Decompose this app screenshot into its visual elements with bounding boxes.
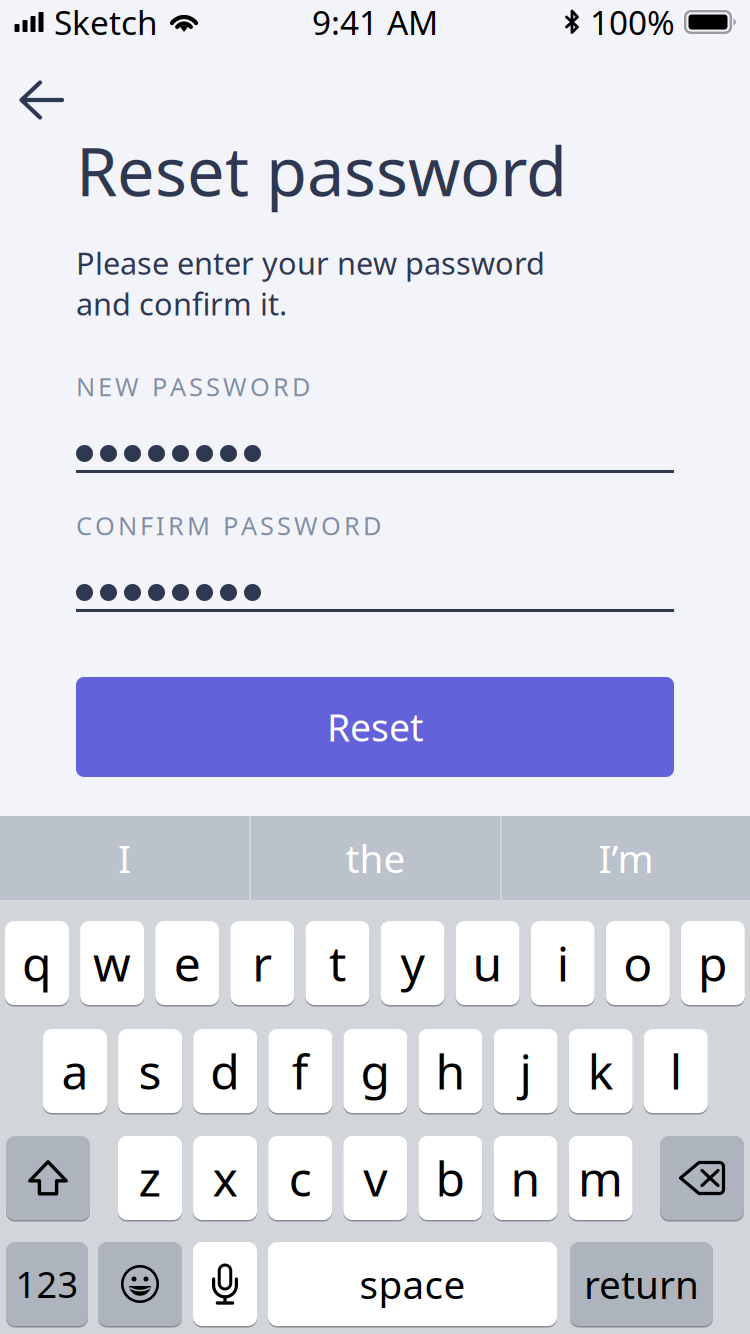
staticText: I’m	[598, 832, 653, 884]
staticText: y	[400, 931, 424, 995]
button[interactable]: q	[5, 919, 69, 1006]
button[interactable]: I	[0, 816, 249, 900]
button[interactable]: Shift	[6, 1134, 90, 1221]
button[interactable]: Delete	[660, 1134, 744, 1221]
button[interactable]: I’m	[502, 816, 750, 900]
button[interactable]: j	[494, 1027, 558, 1114]
staticText: Reset password	[76, 126, 567, 214]
staticText: and confirm it.	[76, 283, 287, 324]
staticText: x	[213, 1146, 238, 1210]
staticText: C O N F I R M P A S S W O R D	[76, 509, 381, 542]
staticText: Sketch	[54, 0, 158, 44]
staticText: n	[510, 1146, 540, 1210]
button[interactable]: space	[268, 1240, 557, 1327]
button[interactable]: p	[681, 919, 745, 1006]
staticText: 9:41 AM	[312, 0, 438, 44]
button[interactable]: m	[569, 1134, 633, 1221]
staticText: r	[252, 931, 272, 995]
button[interactable]: h	[418, 1027, 482, 1114]
staticText: I	[118, 832, 131, 884]
button[interactable]: x	[193, 1134, 257, 1221]
button[interactable]: return	[570, 1240, 713, 1327]
staticText: u	[473, 931, 503, 995]
staticText: e	[174, 931, 201, 995]
button[interactable]: c	[268, 1134, 332, 1221]
button[interactable]: the	[251, 816, 500, 900]
staticText: h	[435, 1039, 465, 1103]
button[interactable]: z	[118, 1134, 182, 1221]
button[interactable]: Emoji	[98, 1240, 182, 1327]
staticText: return	[584, 1258, 699, 1310]
staticText: i	[557, 931, 569, 995]
button[interactable]: a	[43, 1027, 107, 1114]
staticText: d	[210, 1039, 240, 1103]
button[interactable]: l	[644, 1027, 708, 1114]
staticText: s	[139, 1039, 162, 1103]
staticText: a	[61, 1039, 88, 1103]
staticText: 123	[15, 1260, 78, 1308]
staticText: o	[623, 931, 652, 995]
staticText: m	[578, 1146, 623, 1210]
staticText: t	[329, 931, 346, 995]
staticText: c	[289, 1146, 312, 1210]
staticText: g	[360, 1039, 390, 1103]
staticText: Please enter your new password	[76, 242, 545, 283]
staticText: the	[345, 832, 405, 884]
staticText: N E W P A S S W O R D	[76, 370, 310, 403]
button[interactable]: k	[569, 1027, 633, 1114]
staticText: space	[359, 1258, 465, 1310]
button[interactable]: s	[118, 1027, 182, 1114]
staticText: Reset	[327, 702, 423, 752]
button[interactable]: g	[343, 1027, 407, 1114]
button[interactable]: w	[80, 919, 144, 1006]
button[interactable]: Back	[0, 44, 64, 126]
staticText: l	[670, 1039, 682, 1103]
button[interactable]: y	[380, 919, 444, 1006]
button[interactable]: u	[456, 919, 520, 1006]
button[interactable]: f	[268, 1027, 332, 1114]
staticText: v	[363, 1146, 387, 1210]
button[interactable]: e	[155, 919, 219, 1006]
button[interactable]: 123	[6, 1240, 88, 1327]
staticText: 100%	[590, 0, 675, 44]
staticText: z	[138, 1146, 161, 1210]
button[interactable]: Reset	[76, 677, 674, 777]
button[interactable]: b	[418, 1134, 482, 1221]
staticText: b	[435, 1146, 465, 1210]
button[interactable]: t	[305, 919, 369, 1006]
staticText: j	[520, 1039, 532, 1103]
button[interactable]: r	[230, 919, 294, 1006]
button[interactable]: v	[343, 1134, 407, 1221]
button[interactable]: o	[606, 919, 670, 1006]
button[interactable]: n	[493, 1134, 557, 1221]
button[interactable]: d	[193, 1027, 257, 1114]
button[interactable]: Dictation	[193, 1240, 257, 1327]
staticText: f	[292, 1039, 309, 1103]
staticText: w	[93, 931, 131, 995]
staticText: q	[22, 931, 52, 995]
staticText: p	[698, 931, 728, 995]
button[interactable]: i	[531, 919, 595, 1006]
staticText: k	[588, 1039, 614, 1103]
